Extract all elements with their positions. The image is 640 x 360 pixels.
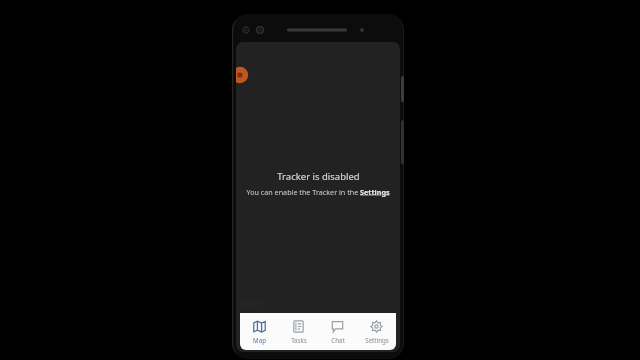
staticText: Tracker is disabled [277,170,360,183]
button[interactable]: Settings [357,313,396,344]
staticText: Tasks [291,336,307,344]
button[interactable]: Tasks [279,313,318,344]
button[interactable]: Map [240,313,279,344]
staticText: You can enable the Tracker in the Settin… [246,187,390,197]
button[interactable]: Chat [318,313,357,344]
staticText: Settings [365,336,389,344]
staticText: Map [253,336,266,344]
staticText: Chat [331,336,345,344]
